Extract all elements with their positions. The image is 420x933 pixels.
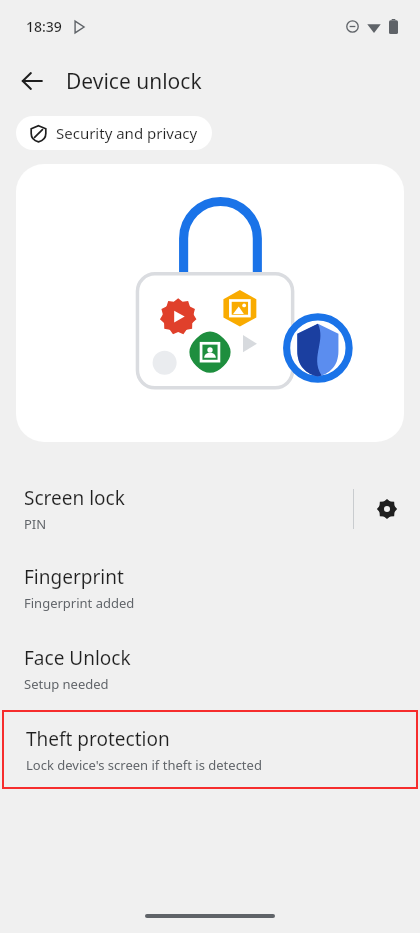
staticText: Lock device's screen if theft is detecte… <box>26 756 262 774</box>
staticText: Security and privacy <box>56 123 198 143</box>
button[interactable]: Screen lock settings <box>354 470 420 548</box>
staticText: Screen lock <box>24 485 125 511</box>
staticText: PIN <box>24 515 47 533</box>
staticText: 18:39 <box>26 17 62 36</box>
button[interactable]: Theft protection <box>4 712 416 787</box>
button[interactable]: Back <box>10 59 54 103</box>
staticText: Theft protection <box>26 726 170 752</box>
staticText: Device unlock <box>66 67 202 96</box>
staticText: Fingerprint <box>24 564 124 590</box>
staticText: Fingerprint added <box>24 594 135 612</box>
button[interactable]: Face Unlock <box>0 629 420 710</box>
button[interactable]: Security and privacy <box>16 116 212 150</box>
button[interactable]: Fingerprint <box>0 548 420 629</box>
button[interactable]: Screen lock <box>0 470 420 548</box>
staticText: Setup needed <box>24 675 109 693</box>
staticText: Face Unlock <box>24 645 131 671</box>
